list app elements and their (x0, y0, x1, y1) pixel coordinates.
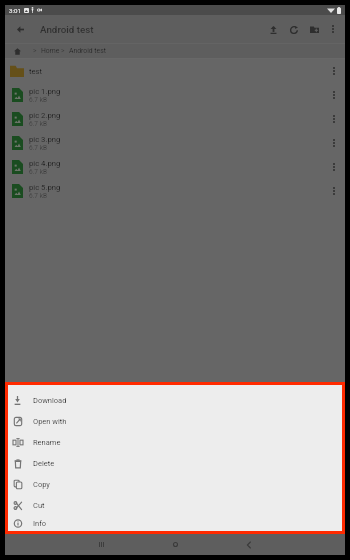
button[interactable]: pic 2.png (5, 107, 345, 131)
button[interactable]: Item options (325, 158, 343, 176)
staticText: 6.7 kB (29, 192, 47, 200)
button[interactable]: Item options (325, 62, 343, 80)
staticText: Delete (33, 459, 55, 468)
button[interactable]: pic 1.png (5, 83, 345, 107)
button[interactable]: Upload (264, 20, 283, 39)
button[interactable]: pic 5.png (5, 179, 345, 203)
button[interactable]: Info (8, 516, 342, 531)
button[interactable]: Back (240, 534, 258, 555)
staticText: Home (41, 47, 60, 55)
staticText: Android test (69, 47, 106, 55)
staticText: pic 2.png (29, 111, 61, 120)
staticText: Android test (40, 24, 94, 35)
staticText: pic 1.png (29, 87, 61, 96)
staticText: Rename (33, 438, 61, 447)
button[interactable]: Download (8, 390, 342, 411)
staticText: Copy (33, 480, 50, 489)
staticText: 6.7 kB (29, 120, 47, 128)
button[interactable]: > (14, 43, 345, 59)
staticText: 3:01 (9, 7, 21, 14)
button[interactable]: Recent apps (92, 534, 110, 555)
staticText: Cut (33, 501, 45, 510)
button[interactable]: Home (166, 534, 184, 555)
button[interactable]: Item options (325, 110, 343, 128)
button[interactable]: Navigate up (10, 19, 30, 39)
button[interactable]: More options (324, 20, 342, 38)
button[interactable]: Item options (325, 182, 343, 200)
staticText: pic 4.png (29, 159, 61, 168)
staticText: pic 5.png (29, 183, 61, 192)
staticText: Info (33, 519, 47, 528)
staticText: 6.7 kB (29, 168, 47, 176)
staticText: > (61, 47, 65, 55)
button[interactable]: Open with (8, 411, 342, 432)
staticText: Download (33, 396, 67, 405)
button[interactable]: Item options (325, 86, 343, 104)
button[interactable]: pic 3.png (5, 131, 345, 155)
button[interactable]: Refresh (284, 20, 303, 39)
button[interactable]: Delete (8, 453, 342, 474)
staticText: pic 3.png (29, 135, 61, 144)
staticText: test (29, 67, 43, 76)
button[interactable]: Rename (8, 432, 342, 453)
button[interactable]: Copy (8, 474, 342, 495)
button[interactable]: test (5, 59, 345, 83)
staticText: Open with (33, 417, 67, 426)
button[interactable]: New folder (305, 20, 324, 39)
staticText: 6.7 kB (29, 144, 47, 152)
staticText: 6.7 kB (29, 96, 47, 104)
button[interactable]: Cut (8, 495, 342, 516)
button[interactable]: pic 4.png (5, 155, 345, 179)
staticText: > (33, 47, 37, 55)
button[interactable]: Item options (325, 134, 343, 152)
